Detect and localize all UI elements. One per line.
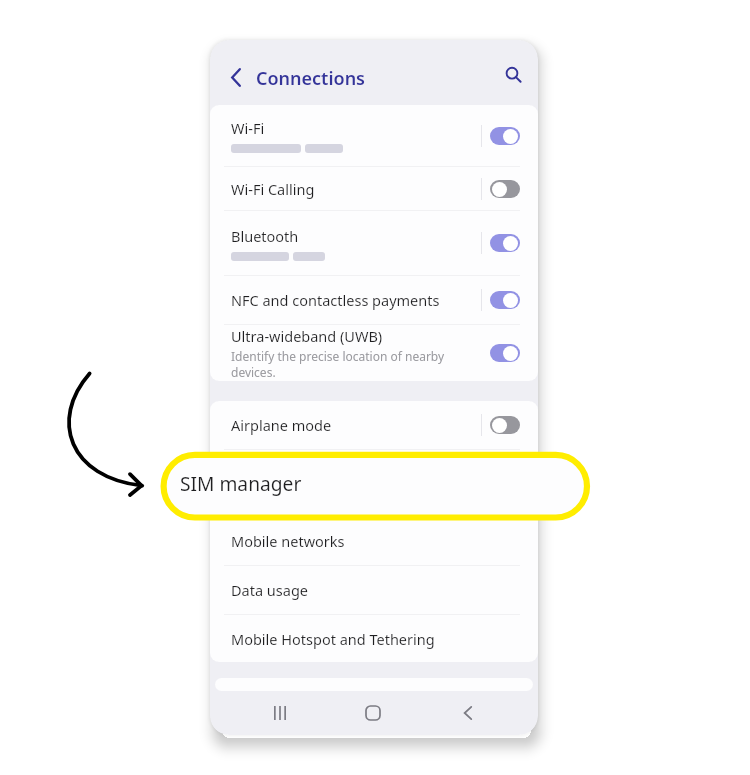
button[interactable]: NFC and contactless payments [210,276,538,324]
staticText: Connections [256,66,365,91]
staticText: Mobile Hotspot and Tethering [231,629,435,649]
button[interactable]: SIM manager [157,448,593,522]
staticText: Wi-Fi Calling [231,179,315,199]
button[interactable]: Off [490,416,520,434]
button[interactable]: Ultra-wideband (UWB) [210,325,538,381]
staticText: SIM manager [231,473,323,493]
button[interactable]: Airplane mode [210,401,538,449]
staticText: Wi-Fi [231,118,265,138]
button[interactable]: On [490,127,520,145]
staticText: Bluetooth [231,226,299,246]
button[interactable]: Back [432,691,502,735]
button[interactable]: Wi-Fi Calling [210,167,538,210]
button[interactable]: Mobile networks [210,516,538,565]
button[interactable]: Recent apps [245,691,315,735]
staticText: Airplane mode [231,415,332,435]
staticText: SIM manager [180,470,302,496]
staticText: Identify the precise location of nearby … [231,348,482,380]
button[interactable]: On [490,291,520,309]
button[interactable]: On [490,344,520,362]
button[interactable]: Wi-Fi [210,105,538,166]
button[interactable]: Mobile Hotspot and Tethering [210,615,538,662]
button[interactable]: Off [490,180,520,198]
button[interactable]: Data usage [210,566,538,614]
button[interactable]: Home [338,691,408,735]
staticText: NFC and contactless payments [231,290,440,310]
button[interactable]: Back [216,57,256,97]
staticText: Data usage [231,580,308,600]
button[interactable]: SIM manager [210,450,538,515]
button[interactable]: Search [495,57,535,97]
button[interactable]: On [490,234,520,252]
staticText: Mobile networks [231,531,345,551]
button[interactable]: Bluetooth [210,211,538,275]
staticText: Ultra-wideband (UWB) [231,326,383,346]
